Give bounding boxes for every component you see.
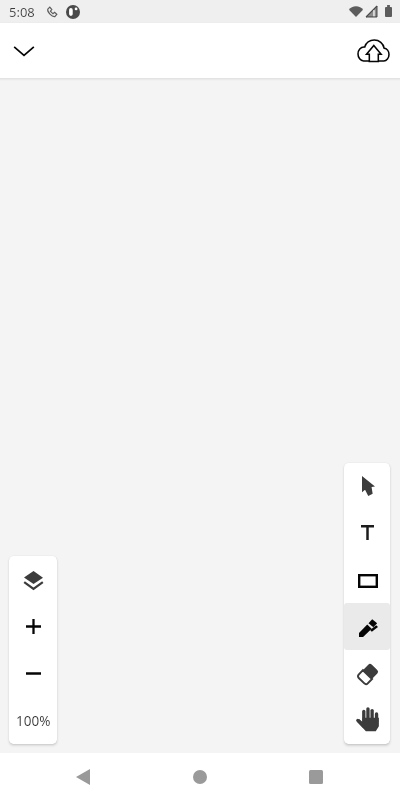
button[interactable]: Layers: [9, 556, 57, 603]
staticText: 100%: [16, 712, 51, 730]
button[interactable]: Upload to cloud: [348, 27, 396, 75]
button[interactable]: Back: [59, 753, 107, 800]
button[interactable]: Text tool: [344, 509, 390, 556]
button[interactable]: Pencil tool: [344, 603, 390, 650]
button[interactable]: 100%: [9, 697, 57, 744]
button[interactable]: Zoom in: [9, 603, 57, 650]
button[interactable]: Collapse: [0, 27, 48, 75]
button[interactable]: Home: [176, 753, 224, 800]
button[interactable]: Select tool: [344, 463, 390, 509]
button[interactable]: Rectangle tool: [344, 556, 390, 603]
button[interactable]: Recents: [292, 753, 340, 800]
button[interactable]: Zoom out: [9, 650, 57, 697]
button[interactable]: Eraser tool: [344, 650, 390, 697]
staticText: 5:08: [9, 3, 35, 21]
button[interactable]: Pan tool: [344, 697, 390, 744]
